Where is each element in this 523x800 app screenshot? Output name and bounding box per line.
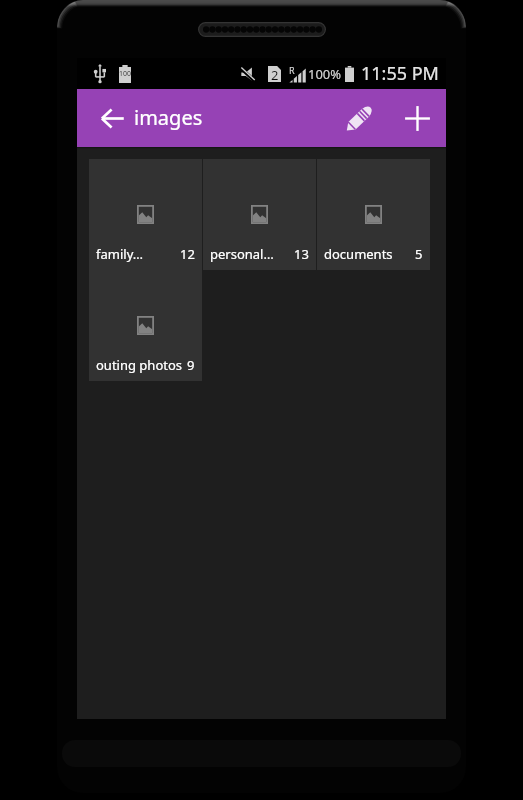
staticText: 9 (187, 356, 195, 374)
staticText: documents (324, 245, 411, 263)
staticText: 13 (294, 245, 309, 263)
button[interactable]: personal… (203, 159, 316, 270)
staticText: 11:55 PM (361, 61, 439, 86)
staticText: R (289, 64, 295, 76)
button[interactable]: Add (388, 89, 446, 147)
staticText: 12 (180, 245, 195, 263)
staticText: personal… (210, 245, 290, 263)
staticText: 5 (415, 245, 423, 263)
button[interactable]: family… (89, 159, 202, 270)
button[interactable]: Back (77, 89, 134, 147)
staticText: 100 (119, 69, 131, 79)
button[interactable]: outing photos (89, 270, 202, 381)
staticText: 2 (271, 66, 279, 82)
staticText: images (134, 104, 203, 131)
staticText: 100% (308, 65, 342, 83)
staticText: outing photos (96, 356, 183, 374)
button[interactable]: documents (317, 159, 430, 270)
staticText: family… (96, 245, 176, 263)
button[interactable]: Edit (332, 89, 388, 147)
